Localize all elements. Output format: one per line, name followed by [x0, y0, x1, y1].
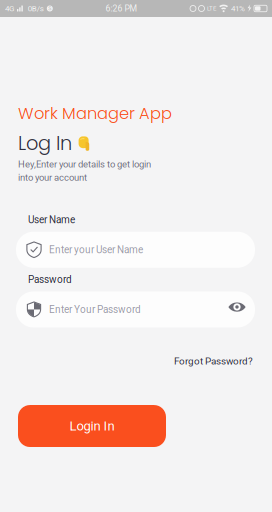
staticText: Log In: [18, 130, 72, 157]
staticText: Forgot Password?: [174, 355, 253, 367]
staticText: User Name: [28, 214, 75, 226]
staticText: Hey,Enter your details to get login: [18, 159, 151, 170]
staticText: 4G: [5, 4, 14, 13]
button[interactable]: Forgot Password?: [172, 352, 255, 370]
staticText: S: [48, 5, 51, 12]
button[interactable]: Login In: [18, 405, 166, 447]
button[interactable]: Show password: [228, 301, 246, 317]
staticText: 41%: [231, 4, 245, 13]
staticText: Password: [28, 274, 72, 285]
staticText: Enter Your Password: [49, 304, 141, 315]
staticText: 0B/s: [28, 4, 44, 13]
staticText: Work Manager App: [18, 102, 172, 125]
staticText: 6:26 PM: [105, 3, 137, 14]
staticText: Enter your User Name: [49, 244, 143, 256]
staticText: LTE: [207, 5, 216, 12]
staticText: Login In: [69, 418, 114, 434]
staticText: into your account: [18, 172, 87, 183]
